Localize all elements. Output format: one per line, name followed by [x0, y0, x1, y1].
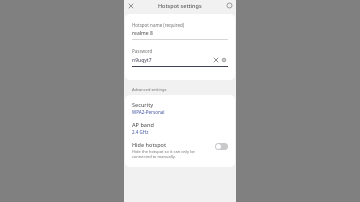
button[interactable]: Password — [132, 48, 228, 67]
staticText: n9uqyt7 — [132, 57, 212, 64]
button[interactable]: Help — [225, 1, 234, 10]
staticText: Hide the hotspot so it can only be conne… — [132, 149, 211, 159]
button[interactable]: Hide hotspot — [125, 141, 235, 159]
staticText: Hotspot name (required) — [132, 22, 185, 28]
button[interactable]: Security — [125, 101, 235, 115]
staticText: WPA2-Personal — [132, 109, 165, 115]
staticText: realme 8 — [132, 30, 228, 37]
button[interactable]: Show password — [220, 56, 228, 64]
staticText: Password — [132, 48, 153, 54]
button[interactable]: Close — [126, 1, 135, 10]
button[interactable]: Clear — [212, 56, 220, 64]
staticText: AP band — [132, 121, 154, 128]
staticText: Hide hotspot — [132, 141, 167, 148]
button[interactable]: Hotspot name (required) — [132, 22, 228, 40]
staticText: Security — [132, 101, 154, 108]
staticText: 2.4 GHz — [132, 129, 149, 135]
staticText: Advanced settings — [132, 87, 167, 92]
staticText: Hotspot settings — [158, 2, 202, 9]
button[interactable]: Hide hotspot toggle — [215, 143, 228, 150]
button[interactable]: AP band — [125, 121, 235, 135]
